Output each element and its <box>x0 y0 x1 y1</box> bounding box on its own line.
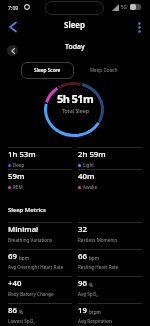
staticText: 5G <box>121 4 127 10</box>
staticText: brpm <box>89 309 101 315</box>
staticText: % <box>89 282 93 288</box>
staticText: 19 <box>78 305 87 316</box>
staticText: Body Battery Change <box>8 291 54 297</box>
button[interactable]: 69 <box>8 251 74 270</box>
button[interactable] <box>132 20 146 34</box>
staticText: % <box>19 309 23 315</box>
staticText: Sleep Coach <box>90 67 118 74</box>
button[interactable]: 1h 53m <box>8 149 74 168</box>
button[interactable]: 59m <box>8 171 74 190</box>
button[interactable]: 2h 59m <box>78 149 144 168</box>
staticText: Avg SpO₂ <box>78 291 98 297</box>
staticText: Avg Respiration <box>78 318 112 324</box>
staticText: 66 <box>78 251 87 262</box>
button[interactable]: 66 <box>78 251 144 270</box>
staticText: Deep <box>13 162 25 168</box>
staticText: Sleep <box>64 19 86 30</box>
button[interactable]: 86 <box>8 305 74 324</box>
button[interactable]: 19 <box>78 305 144 324</box>
button[interactable]: +40 <box>8 278 74 297</box>
staticText: Light <box>83 162 94 168</box>
staticText: 1h 53m <box>8 149 36 160</box>
staticText: Sleep Metrics <box>8 206 46 214</box>
staticText: Today <box>65 42 85 52</box>
staticText: Sleep Score <box>34 67 61 74</box>
staticText: +40 <box>8 278 22 289</box>
staticText: bpm <box>89 255 99 261</box>
button[interactable]: Minimal <box>8 224 74 243</box>
staticText: 96 <box>78 278 87 289</box>
staticText: 69 <box>8 251 17 262</box>
staticText: 40m <box>78 171 95 182</box>
staticText: Awake <box>83 184 98 190</box>
button[interactable]: Sleep Score <box>21 62 74 79</box>
button[interactable] <box>4 20 20 34</box>
staticText: 59m <box>8 171 25 182</box>
staticText: Restless Moments <box>78 237 118 243</box>
button[interactable]: 40m <box>78 171 144 190</box>
staticText: 5h 51m <box>57 91 94 106</box>
staticText: 32 <box>78 224 87 235</box>
staticText: Avg Overnight Heart Rate <box>8 264 64 270</box>
staticText: Minimal <box>8 224 39 235</box>
button[interactable]: 96 <box>78 278 144 297</box>
staticText: 7:09 <box>8 4 19 11</box>
button[interactable]: 32 <box>78 224 144 243</box>
staticText: 2h 59m <box>78 149 106 160</box>
staticText: bpm <box>19 255 29 261</box>
staticText: Lowest SpO₂ <box>8 318 35 324</box>
staticText: REM <box>13 184 23 190</box>
staticText: 86 <box>8 305 17 316</box>
button[interactable]: Sleep Coach <box>80 62 128 79</box>
staticText: Total Sleep <box>62 107 89 114</box>
staticText: Resting Heart Rate <box>78 264 119 270</box>
staticText: Breathing Variations <box>8 237 53 243</box>
button[interactable] <box>7 45 18 56</box>
